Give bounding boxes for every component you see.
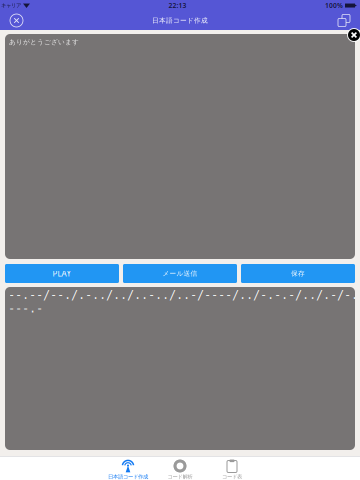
button[interactable]: Close: [5, 9, 28, 32]
staticText: ---.-: [8, 302, 43, 315]
staticText: ありがとうございます: [9, 38, 79, 46]
staticText: 保存: [291, 269, 305, 278]
button[interactable]: コード解析: [154, 456, 206, 480]
staticText: --.--/--./.-../../..-../..-/----/../-.-.…: [8, 288, 360, 302]
staticText: 日本語コード作成: [108, 473, 148, 480]
staticText: 日本語コード作成: [152, 16, 208, 25]
staticText: コード表: [222, 473, 242, 480]
button[interactable]: Copy: [333, 9, 355, 31]
button[interactable]: Clear text: [347, 28, 360, 42]
staticText: メール送信: [162, 269, 197, 278]
button[interactable]: 保存: [241, 264, 355, 283]
button[interactable]: PLAY: [5, 264, 119, 283]
staticText: 100%: [325, 1, 343, 10]
button[interactable]: コード表: [206, 456, 258, 480]
staticText: 22:13: [168, 1, 186, 10]
button[interactable]: 日本語コード作成: [102, 456, 154, 480]
staticText: コード解析: [167, 473, 192, 480]
staticText: キャリア: [1, 2, 21, 9]
staticText: PLAY: [52, 268, 71, 279]
button[interactable]: メール送信: [123, 264, 237, 283]
